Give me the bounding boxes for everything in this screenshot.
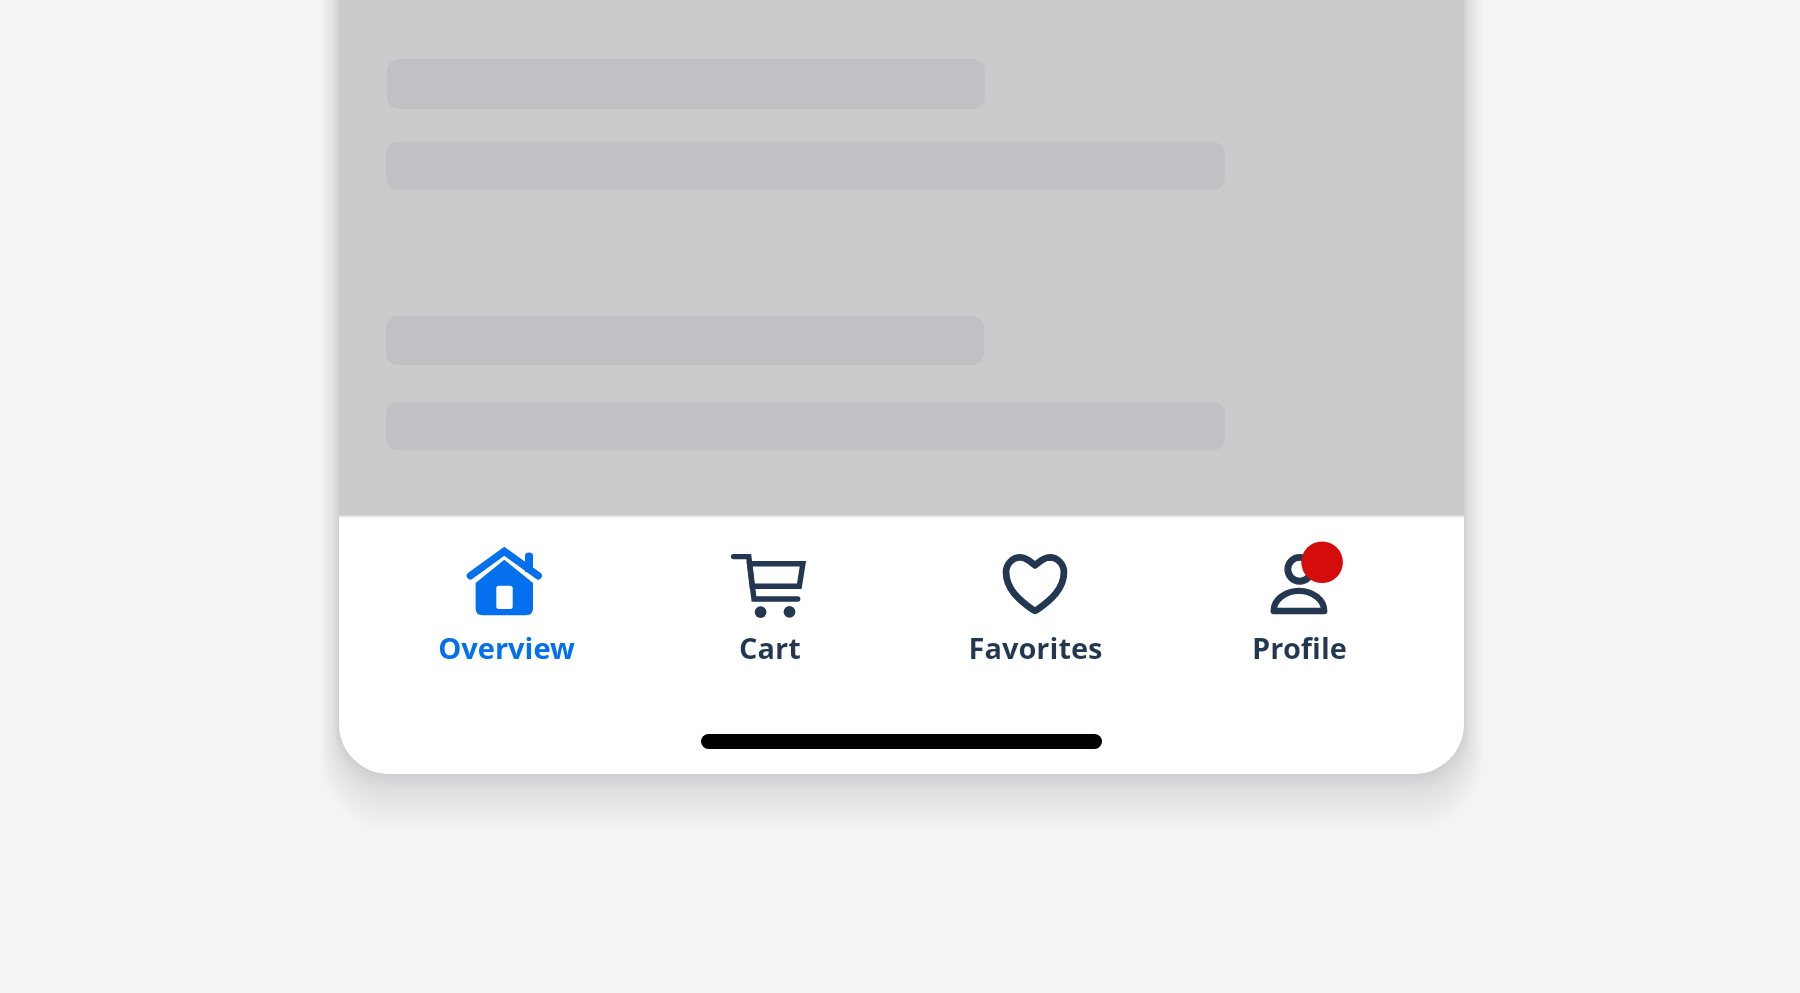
staticText: Overview bbox=[438, 628, 575, 667]
button[interactable]: Profile bbox=[1189, 515, 1409, 690]
staticText: Favorites bbox=[968, 628, 1103, 667]
staticText: Cart bbox=[739, 628, 801, 667]
button[interactable]: Cart bbox=[660, 515, 880, 690]
button[interactable]: Favorites bbox=[925, 515, 1145, 690]
staticText: Profile bbox=[1252, 628, 1347, 667]
button[interactable]: Overview bbox=[396, 515, 616, 690]
